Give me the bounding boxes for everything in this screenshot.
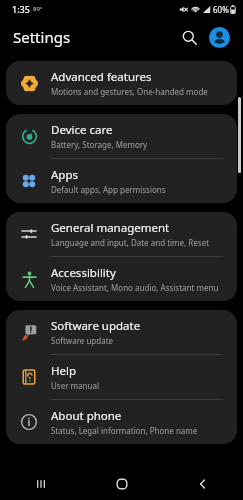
staticText: Advanced features bbox=[51, 69, 152, 85]
staticText: Default apps, App permissions bbox=[51, 184, 166, 195]
staticText: Motions and gestures, One-handed mode bbox=[51, 86, 208, 97]
button[interactable]: Device care bbox=[6, 114, 237, 158]
staticText: 1:35 bbox=[12, 3, 30, 15]
staticText: About phone bbox=[51, 408, 122, 424]
staticText: Help bbox=[51, 363, 77, 379]
staticText: Apps bbox=[51, 167, 79, 183]
button[interactable]: About phone bbox=[6, 400, 237, 444]
button[interactable]: Account bbox=[205, 23, 233, 51]
button[interactable]: Back bbox=[180, 468, 226, 500]
staticText: Status, Legal information, Phone name bbox=[51, 425, 198, 436]
button[interactable]: Advanced features bbox=[6, 61, 237, 105]
staticText: Voice Assistant, Mono audio, Assistant m… bbox=[51, 282, 219, 293]
staticText: Device care bbox=[51, 122, 113, 138]
staticText: 60% bbox=[213, 4, 229, 15]
button[interactable]: Help bbox=[6, 355, 237, 399]
button[interactable]: Recents bbox=[18, 468, 64, 500]
staticText: General management bbox=[51, 220, 170, 236]
button[interactable]: Search bbox=[175, 23, 203, 51]
staticText: Software update bbox=[51, 335, 114, 346]
staticText: Battery, Storage, Memory bbox=[51, 139, 148, 150]
staticText: Accessibility bbox=[51, 265, 116, 281]
staticText: Software update bbox=[51, 318, 141, 334]
button[interactable]: General management bbox=[6, 212, 237, 256]
button[interactable]: Home bbox=[99, 468, 145, 500]
staticText: User manual bbox=[51, 380, 99, 391]
staticText: 89° bbox=[33, 5, 43, 13]
button[interactable]: Software update bbox=[6, 310, 237, 354]
staticText: Settings bbox=[13, 27, 71, 47]
staticText: Language and input, Date and time, Reset bbox=[51, 237, 210, 248]
button[interactable]: Apps bbox=[6, 159, 237, 203]
button[interactable]: Accessibility bbox=[6, 257, 237, 301]
